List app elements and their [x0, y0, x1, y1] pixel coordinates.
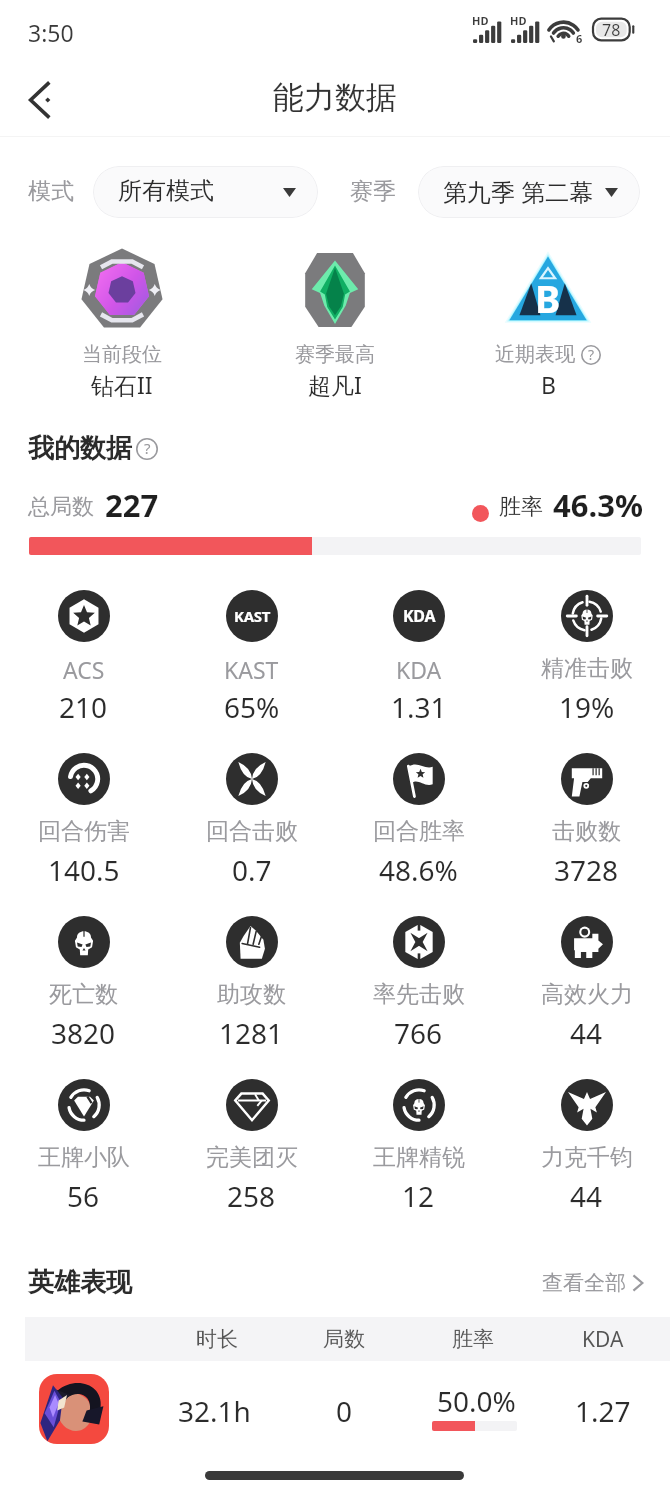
- staticText: 助攻数: [217, 980, 286, 1009]
- button[interactable]: 击败数: [503, 732, 670, 890]
- staticText: 1.27: [575, 1392, 631, 1430]
- staticText: 第九季 第二幕: [443, 175, 594, 208]
- staticText: 140.5: [48, 851, 120, 889]
- button[interactable]: 所有模式: [93, 166, 318, 218]
- staticText: 78: [602, 19, 621, 41]
- button[interactable]: 当前段位: [17, 239, 227, 414]
- button[interactable]: 力克千钧: [503, 1058, 670, 1216]
- staticText: 回合伤害: [38, 817, 130, 846]
- staticText: B: [535, 272, 561, 324]
- staticText: 0: [336, 1392, 353, 1430]
- staticText: 766: [394, 1014, 443, 1052]
- staticText: HD: [510, 13, 527, 28]
- button[interactable]: KDA: [335, 569, 502, 727]
- button[interactable]: 率先击败: [335, 895, 502, 1053]
- button[interactable]: 查看全部: [542, 1270, 644, 1296]
- staticText: 50.0%: [437, 1382, 516, 1420]
- staticText: 查看全部: [542, 1270, 626, 1296]
- staticText: 56: [67, 1177, 100, 1215]
- staticText: 所有模式: [118, 176, 214, 206]
- staticText: 胜率: [499, 493, 543, 521]
- staticText: 完美团灭: [206, 1143, 298, 1172]
- staticText: 0.7: [232, 851, 272, 889]
- button[interactable]: 死亡数: [0, 895, 167, 1053]
- staticText: 赛季最高: [295, 342, 375, 367]
- button[interactable]: 回合伤害: [0, 732, 167, 890]
- staticText: 总局数: [28, 493, 94, 521]
- staticText: ACS: [63, 654, 105, 685]
- staticText: 回合胜率: [373, 817, 465, 846]
- staticText: ?: [144, 438, 151, 458]
- staticText: KDA: [403, 605, 436, 627]
- button[interactable]: 赛季最高: [230, 239, 440, 414]
- button[interactable]: 32.1h: [0, 1361, 670, 1452]
- staticText: KDA: [582, 1325, 624, 1354]
- staticText: 率先击败: [373, 980, 465, 1009]
- staticText: 32.1h: [178, 1392, 251, 1430]
- staticText: 227: [105, 484, 159, 526]
- staticText: 近期表现: [495, 342, 575, 367]
- staticText: 12: [402, 1177, 435, 1215]
- button[interactable]: 第九季 第二幕: [418, 166, 640, 218]
- staticText: 6: [576, 31, 583, 46]
- staticText: 44: [570, 1177, 603, 1215]
- button[interactable]: 完美团灭: [168, 1058, 335, 1216]
- staticText: 3820: [51, 1014, 116, 1052]
- button[interactable]: ACS: [0, 569, 167, 727]
- staticText: 王牌精锐: [373, 1143, 465, 1172]
- staticText: 时长: [196, 1326, 238, 1352]
- staticText: 我的数据: [28, 432, 132, 465]
- staticText: 英雄表现: [28, 1266, 132, 1299]
- staticText: HD: [472, 13, 489, 28]
- staticText: 钻石II: [91, 369, 153, 400]
- staticText: B: [541, 369, 556, 400]
- staticText: 赛季: [350, 177, 396, 206]
- staticText: 3728: [554, 851, 619, 889]
- staticText: 1.31: [391, 688, 447, 726]
- staticText: 65%: [224, 688, 280, 726]
- button[interactable]: 王牌精锐: [335, 1058, 502, 1216]
- staticText: 王牌小队: [38, 1143, 130, 1172]
- staticText: 精准击败: [541, 654, 633, 683]
- staticText: KAST: [224, 654, 279, 685]
- staticText: 回合击败: [206, 817, 298, 846]
- staticText: 击败数: [552, 817, 621, 846]
- staticText: 48.6%: [379, 851, 458, 889]
- staticText: 力克千钧: [541, 1143, 633, 1172]
- staticText: 258: [227, 1177, 276, 1215]
- staticText: KAST: [234, 606, 271, 626]
- staticText: 局数: [323, 1326, 365, 1352]
- staticText: 高效火力: [541, 980, 633, 1009]
- button[interactable]: KAST: [168, 569, 335, 727]
- button[interactable]: 回合击败: [168, 732, 335, 890]
- staticText: KDA: [396, 654, 442, 685]
- button[interactable]: 助攻数: [168, 895, 335, 1053]
- staticText: 胜率: [452, 1326, 494, 1352]
- button[interactable]: 王牌小队: [0, 1058, 167, 1216]
- button[interactable]: B: [443, 239, 653, 414]
- staticText: 19%: [559, 688, 615, 726]
- staticText: ?: [588, 345, 595, 364]
- button[interactable]: Back: [12, 71, 70, 129]
- staticText: 44: [570, 1014, 603, 1052]
- button[interactable]: 回合胜率: [335, 732, 502, 890]
- staticText: 超凡I: [308, 369, 362, 400]
- staticText: 3:50: [28, 17, 74, 48]
- staticText: 死亡数: [49, 980, 118, 1009]
- staticText: 当前段位: [82, 342, 162, 367]
- staticText: 能力数据: [273, 78, 397, 117]
- staticText: 1281: [219, 1014, 284, 1052]
- staticText: 46.3%: [553, 484, 643, 526]
- button[interactable]: 精准击败: [503, 569, 670, 727]
- button[interactable]: 高效火力: [503, 895, 670, 1053]
- staticText: 210: [59, 688, 108, 726]
- staticText: 模式: [28, 177, 74, 206]
